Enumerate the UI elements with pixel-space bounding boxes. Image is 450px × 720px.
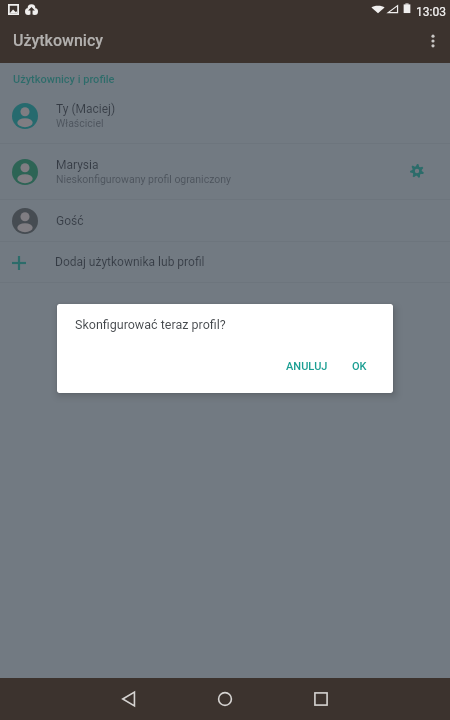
button[interactable]: Ty (Maciej) — [0, 88, 450, 143]
staticText: Właściciel — [56, 117, 104, 129]
staticText: 13:03 — [416, 5, 446, 19]
staticText: Użytkownicy i profile — [13, 73, 115, 86]
button[interactable]: OK — [343, 353, 376, 380]
button[interactable]: Dodaj użytkownika lub profil — [0, 242, 450, 282]
staticText: ANULUJ — [286, 360, 328, 373]
button[interactable]: Back — [81, 678, 177, 720]
button[interactable]: More options — [418, 24, 450, 63]
staticText: Skonfigurować teraz profil? — [75, 317, 226, 332]
staticText: Marysia — [56, 158, 99, 172]
staticText: Gość — [56, 214, 84, 228]
button[interactable]: Gość — [0, 200, 450, 241]
staticText: Ty (Maciej) — [56, 102, 116, 116]
staticText: Dodaj użytkownika lub profil — [55, 255, 205, 269]
staticText: Użytkownicy — [13, 31, 104, 50]
button[interactable]: Marysia — [0, 144, 450, 199]
staticText: Nieskonfigurowany profil ograniczony — [56, 173, 232, 185]
staticText: OK — [352, 360, 367, 373]
button[interactable]: Profile settings — [395, 150, 439, 194]
button[interactable]: Recents — [273, 678, 369, 720]
button[interactable]: ANULUJ — [277, 353, 337, 380]
button[interactable]: Home — [177, 678, 273, 720]
